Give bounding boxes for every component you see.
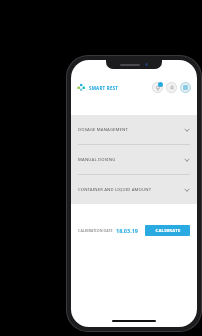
staticText: DOSAGE MANAGEMENT [78, 127, 128, 133]
button[interactable]: CONTAINER AND LIQUID AMOUNT [71, 175, 197, 204]
staticText: MANUAL DOSING [78, 157, 116, 163]
button[interactable]: Account [166, 82, 177, 93]
staticText: SMART REST [89, 85, 119, 91]
staticText: CALIBRATE [155, 228, 181, 234]
button[interactable]: Menu [180, 82, 191, 93]
button[interactable]: DOSAGE MANAGEMENT [71, 115, 197, 144]
staticText: 18.03.19 [116, 227, 138, 234]
button[interactable]: Notifications [152, 82, 163, 93]
button[interactable]: SMART REST [77, 83, 119, 92]
button[interactable]: CALIBRATE [145, 225, 190, 236]
button[interactable]: MANUAL DOSING [71, 145, 197, 174]
staticText: CALIBRATION DATE [78, 228, 113, 233]
staticText: CONTAINER AND LIQUID AMOUNT [78, 187, 152, 193]
